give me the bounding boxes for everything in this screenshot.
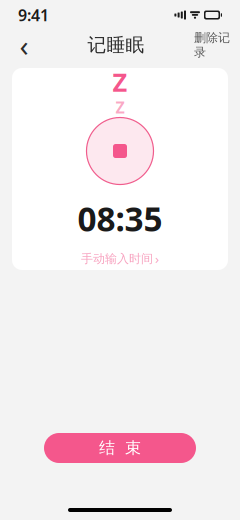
staticText: Z: [115, 97, 124, 118]
staticText: 结 束: [99, 438, 141, 458]
staticText: 9:41: [18, 4, 49, 26]
button[interactable]: Back: [6, 30, 42, 60]
button[interactable]: Stop sleep tracking: [86, 117, 153, 184]
staticText: 记睡眠: [87, 33, 144, 56]
staticText: 删除记录: [194, 30, 230, 60]
staticText: Z: [112, 65, 127, 99]
staticText: 手动输入时间: [81, 251, 153, 266]
staticText: ›: [155, 250, 159, 267]
button[interactable]: 结 束: [44, 433, 196, 463]
staticText: ‹: [19, 25, 28, 64]
staticText: 08:35: [77, 196, 162, 241]
button[interactable]: 手动输入时间: [75, 247, 165, 270]
button[interactable]: 删除记录: [190, 30, 234, 60]
